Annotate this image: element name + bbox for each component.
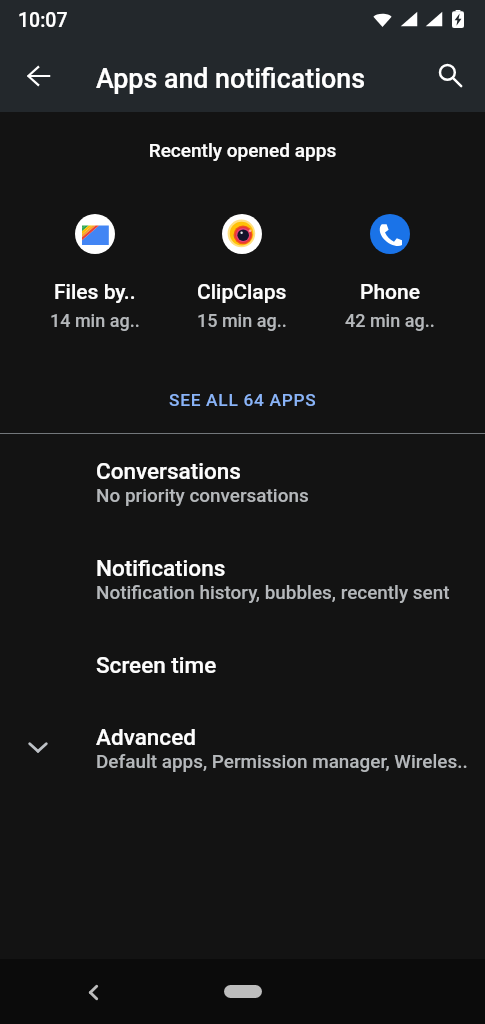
staticText: ClipClaps xyxy=(197,280,287,305)
staticText: SEE ALL 64 APPS xyxy=(169,390,317,410)
staticText: Files by.. xyxy=(54,280,136,305)
staticText: Conversations xyxy=(96,458,241,484)
staticText: Apps and notifications xyxy=(96,63,365,94)
staticText: Advanced xyxy=(96,724,196,750)
button[interactable]: Files by.. xyxy=(21,214,168,331)
button[interactable]: Search xyxy=(426,51,474,99)
staticText: 14 min ag.. xyxy=(50,310,140,331)
staticText: 42 min ag.. xyxy=(345,310,435,331)
button[interactable]: Advanced xyxy=(0,678,485,772)
staticText: Screen time xyxy=(96,652,217,678)
button[interactable]: SEE ALL 64 APPS xyxy=(0,378,485,422)
staticText: Recently opened apps xyxy=(0,139,485,161)
staticText: 10:07 xyxy=(18,9,68,32)
staticText: No priority conversations xyxy=(96,484,309,506)
button[interactable]: ClipClaps xyxy=(168,214,316,331)
staticText: Default apps, Permission manager, Wirele… xyxy=(96,750,468,772)
button[interactable]: Phone xyxy=(316,214,464,331)
button[interactable]: Conversations xyxy=(0,434,485,506)
staticText: 15 min ag.. xyxy=(197,310,287,331)
button[interactable]: Screen time xyxy=(0,603,485,678)
button[interactable]: Navigate up xyxy=(14,52,62,100)
staticText: Notifications xyxy=(96,555,226,581)
staticText: Notification history, bubbles, recently … xyxy=(96,581,450,603)
staticText: Phone xyxy=(360,280,420,305)
button[interactable]: Home xyxy=(224,985,262,998)
button[interactable]: Back xyxy=(70,969,116,1015)
button[interactable]: Notifications xyxy=(0,506,485,603)
